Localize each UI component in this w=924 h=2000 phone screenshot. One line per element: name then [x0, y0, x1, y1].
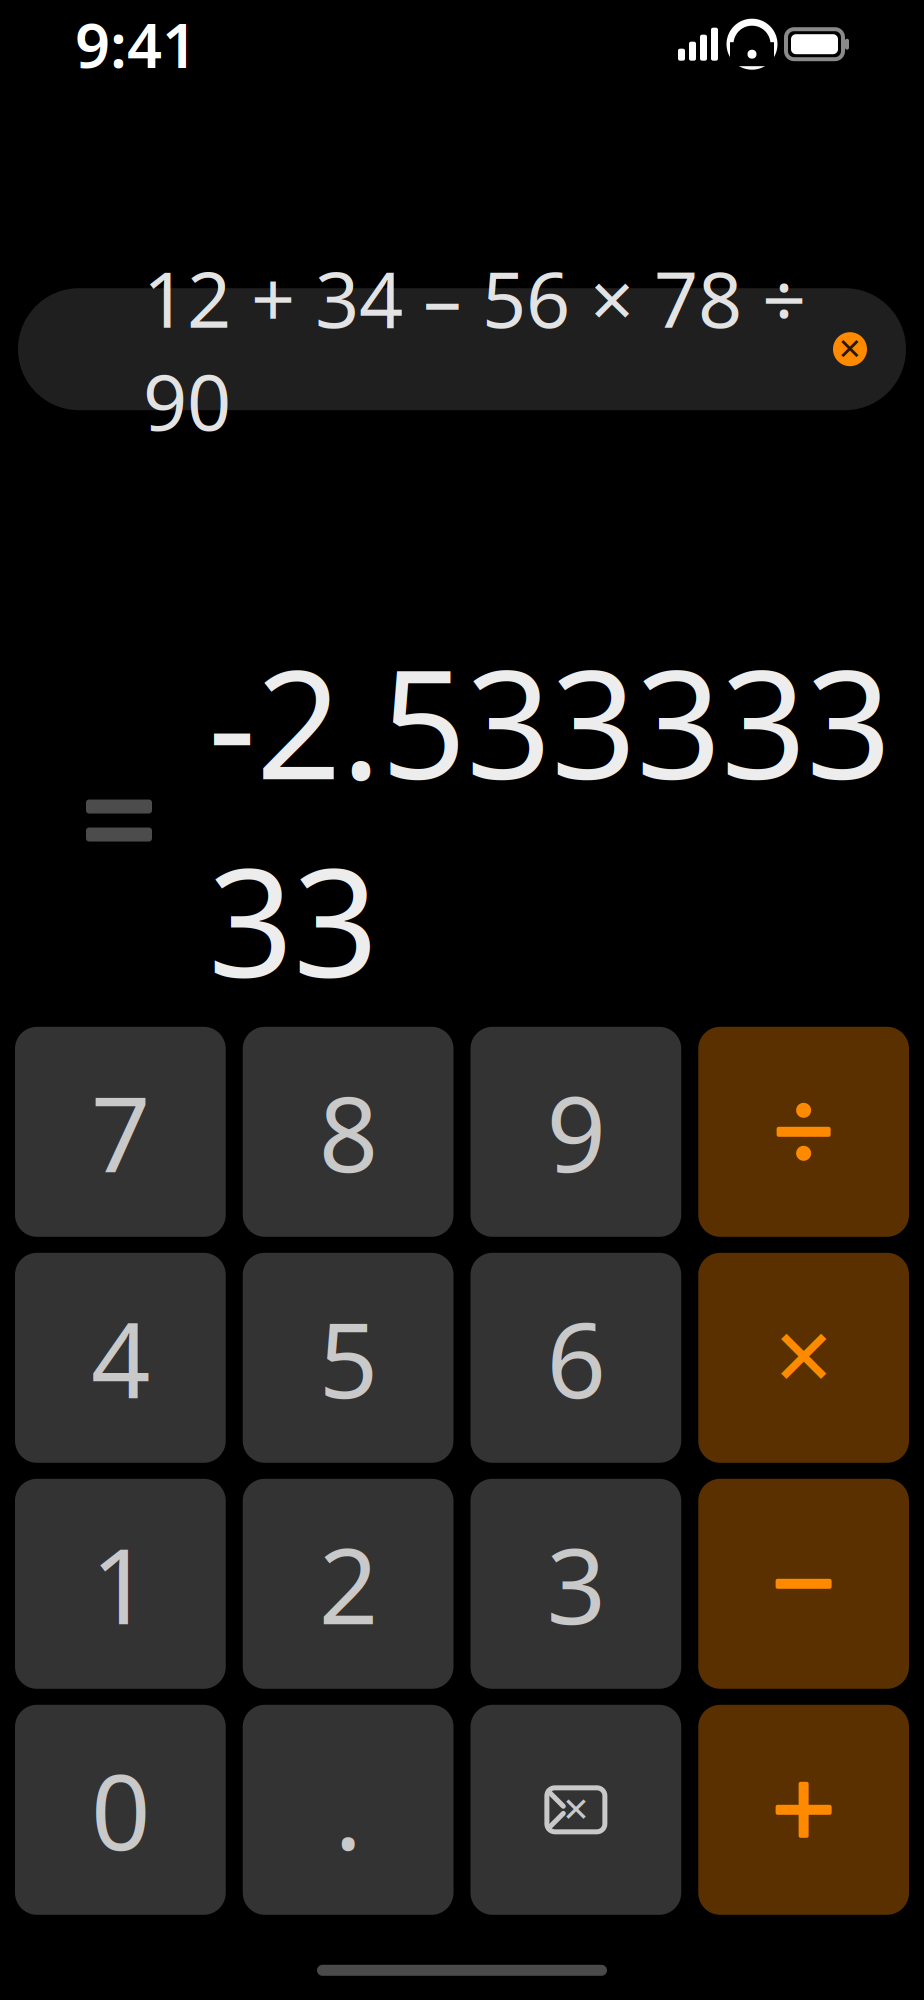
staticText: ✕: [562, 1791, 590, 1829]
button[interactable]: Divide: [698, 1027, 909, 1237]
staticText: -2.53333333: [208, 622, 891, 1019]
button[interactable]: 5: [243, 1253, 454, 1463]
staticText: .: [334, 1741, 362, 1879]
staticText: 5: [319, 1289, 378, 1427]
button[interactable]: Plus: [698, 1705, 909, 1915]
button[interactable]: Multiply: [698, 1253, 909, 1463]
button[interactable]: 0: [15, 1705, 226, 1915]
button[interactable]: 9: [470, 1027, 681, 1237]
button[interactable]: 4: [15, 1253, 226, 1463]
staticText: 0: [91, 1741, 150, 1879]
staticText: ✕: [771, 1314, 836, 1402]
staticText: 9: [546, 1063, 605, 1201]
staticText: 3: [546, 1515, 605, 1653]
button[interactable]: 8: [243, 1027, 454, 1237]
staticText: 4: [91, 1289, 150, 1427]
button[interactable]: .: [243, 1705, 454, 1915]
button[interactable]: 1: [15, 1479, 226, 1689]
staticText: 12 + 34 – 56 × 78 ÷ 90: [143, 246, 806, 452]
button[interactable]: 2: [243, 1479, 454, 1689]
button[interactable]: Delete: [470, 1705, 681, 1915]
staticText: 6: [546, 1289, 605, 1427]
button[interactable]: 3: [470, 1479, 681, 1689]
staticText: 9:41: [75, 3, 197, 85]
button[interactable]: Clear expression: [828, 327, 872, 371]
button[interactable]: 6: [470, 1253, 681, 1463]
staticText: 2: [319, 1515, 378, 1653]
staticText: 7: [91, 1063, 150, 1201]
button[interactable]: 7: [15, 1027, 226, 1237]
staticText: 8: [319, 1063, 378, 1201]
staticText: ✕: [837, 332, 862, 366]
button[interactable]: Minus: [698, 1479, 909, 1689]
staticText: 1: [91, 1515, 150, 1653]
